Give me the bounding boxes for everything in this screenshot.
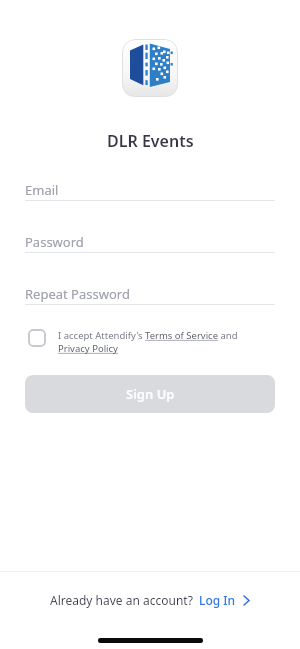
staticText: Sign Up — [126, 385, 175, 403]
button[interactable]: Already have an account? — [50, 592, 250, 608]
staticText: Log In — [199, 592, 236, 608]
staticText: DLR Events — [107, 130, 194, 152]
button[interactable]: Repeat Password — [25, 285, 275, 305]
button[interactable]: Password — [25, 233, 275, 253]
button[interactable]: Sign Up — [25, 375, 275, 413]
staticText: Repeat Password — [25, 285, 130, 303]
staticText: I accept Attendify's Terms of Service an… — [58, 329, 238, 342]
button[interactable]: I accept Attendify's Terms of Service an… — [58, 329, 238, 355]
staticText: Email — [25, 181, 59, 199]
button[interactable]: Email — [25, 181, 275, 201]
staticText: Password — [25, 233, 84, 251]
staticText: Already have an account? — [50, 592, 193, 608]
button[interactable] — [28, 329, 46, 347]
staticText: Privacy Policy — [58, 342, 118, 355]
